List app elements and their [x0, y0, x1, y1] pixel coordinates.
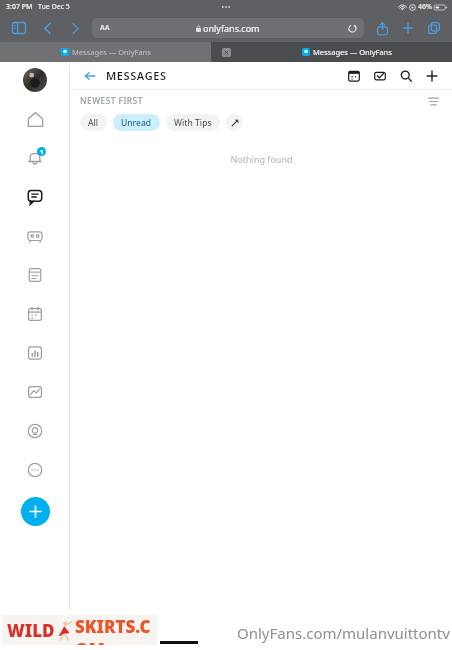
button[interactable]: Messages — OnlyFans [241, 42, 452, 62]
staticText: With Tips [174, 117, 212, 129]
button[interactable]: All [80, 114, 107, 131]
staticText: AA [100, 23, 110, 33]
staticText: MESSAGES [106, 68, 167, 83]
staticText: Tue Dec 5 [38, 2, 70, 12]
staticText: onlyfans.com [203, 22, 260, 34]
button[interactable]: New tab [398, 18, 418, 38]
staticText: Nothing found [230, 153, 293, 165]
button[interactable]: Unread [113, 114, 160, 131]
button[interactable]: Profile [23, 68, 47, 92]
button[interactable]: Statistics [22, 340, 48, 366]
button[interactable]: Share [372, 18, 392, 38]
button[interactable]: Messages — OnlyFans [0, 42, 211, 62]
button[interactable]: Statements [22, 379, 48, 405]
button[interactable]: Tabs [424, 18, 444, 38]
button[interactable]: Sidebar [8, 17, 30, 39]
button[interactable]: Payments [22, 418, 48, 444]
staticText: Unread [121, 117, 152, 129]
button[interactable]: Messages [22, 184, 48, 210]
staticText: All [88, 117, 99, 129]
staticText: NEWEST FIRST [80, 95, 143, 107]
button[interactable]: New message [422, 66, 442, 86]
staticText: Messages — OnlyFans [313, 47, 392, 57]
button[interactable]: Custom filter [226, 114, 243, 131]
staticText: WILD [7, 619, 55, 642]
button[interactable]: Notifications [22, 145, 48, 171]
button[interactable]: Search [396, 66, 416, 86]
staticText: OnlyFans.com/mulanvuittontv [237, 623, 450, 643]
button[interactable]: Vault [22, 262, 48, 288]
staticText: 1 [40, 148, 44, 156]
button[interactable]: Home [22, 106, 48, 132]
button[interactable]: Queue [22, 301, 48, 327]
button[interactable]: Collections [22, 223, 48, 249]
button[interactable]: AA [92, 18, 364, 38]
button[interactable]: Reload [346, 22, 358, 34]
button[interactable]: Forward [64, 17, 86, 39]
staticText: SKIRTS.COM [75, 615, 157, 645]
button[interactable]: Close tab [211, 42, 241, 62]
staticText: 46% [418, 2, 432, 12]
button[interactable]: Back [80, 66, 100, 86]
button[interactable]: Sort [424, 92, 442, 110]
button[interactable]: Schedule [344, 66, 364, 86]
button[interactable]: Back [36, 17, 58, 39]
staticText: Messages — OnlyFans [72, 47, 151, 57]
button[interactable]: Mark all read [370, 66, 390, 86]
staticText: 3:07 PM [6, 2, 33, 12]
button[interactable]: More [22, 457, 48, 483]
button[interactable]: New post [21, 497, 50, 526]
button[interactable]: With Tips [166, 114, 220, 131]
